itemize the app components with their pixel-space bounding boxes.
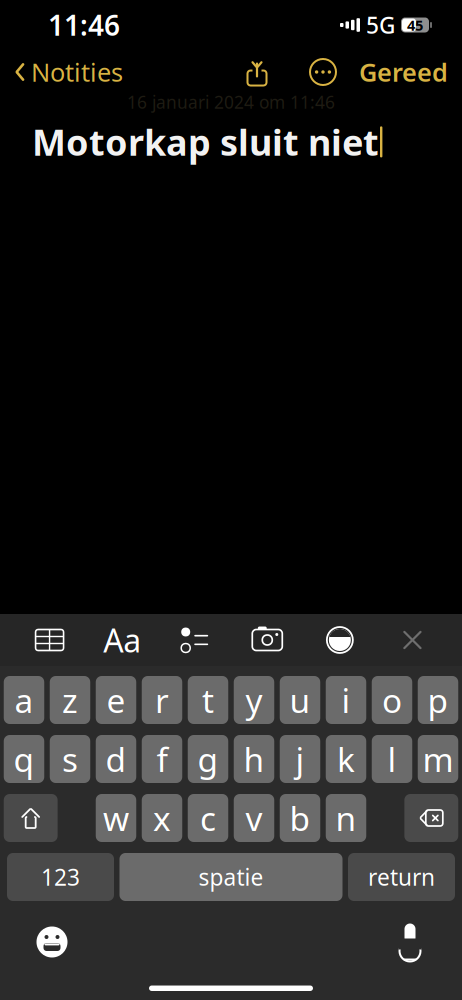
staticText: Motorkap sluit niet [32,118,379,166]
button[interactable]: Dicteren [384,919,436,965]
button[interactable]: o [372,676,412,724]
button[interactable]: Checklijst [172,618,218,662]
staticText: w [103,796,129,840]
button[interactable]: 123 [7,853,114,901]
staticText: j [295,737,304,781]
button[interactable]: m [418,735,458,783]
staticText: 123 [41,862,80,892]
staticText: n [335,796,356,840]
staticText: a [14,678,33,722]
staticText: c [200,796,216,840]
button[interactable]: Opmaak [99,618,145,662]
staticText: t [202,678,214,722]
button[interactable]: Tabel [27,618,73,662]
button[interactable]: v [234,794,274,842]
staticText: 45 [407,15,423,35]
button[interactable]: q [4,735,44,783]
staticText: k [337,737,355,781]
button[interactable]: Meer [301,52,345,92]
button[interactable]: l [372,735,412,783]
staticText: e [106,678,125,722]
button[interactable]: Markeringen [317,618,363,662]
staticText: 5G [366,10,395,40]
staticText: r [155,678,169,722]
button[interactable]: r [142,676,182,724]
staticText: u [289,678,310,722]
button[interactable]: b [280,794,320,842]
button[interactable]: g [188,735,228,783]
staticText: p [427,678,448,722]
button[interactable]: Emoji [26,919,78,965]
button[interactable]: z [50,676,90,724]
staticText: Notities [31,55,123,89]
staticText: 11:46 [48,6,120,44]
staticText: l [387,737,396,781]
button[interactable]: f [142,735,182,783]
staticText: g [197,737,218,781]
staticText: m [422,737,453,781]
button[interactable]: e [96,676,136,724]
button[interactable]: Notities [0,47,123,97]
staticText: return [368,862,435,892]
button[interactable]: Gereed [345,47,462,97]
button[interactable]: c [188,794,228,842]
button[interactable]: Camera [244,618,290,662]
staticText: f [156,737,167,781]
button[interactable]: Sluit toetsenbord [389,618,435,662]
button[interactable]: w [96,794,136,842]
button[interactable]: Shift [4,794,58,842]
staticText: spatie [198,862,263,892]
button[interactable]: s [50,735,90,783]
button[interactable]: p [418,676,458,724]
button[interactable]: i [326,676,366,724]
staticText: y [245,678,262,722]
button[interactable]: x [142,794,182,842]
staticText: v [245,796,262,840]
button[interactable]: k [326,735,366,783]
button[interactable]: h [234,735,274,783]
button[interactable]: Verwijder [404,794,458,842]
staticText: i [341,678,350,722]
staticText: h [243,737,264,781]
button[interactable]: y [234,676,274,724]
button[interactable]: j [280,735,320,783]
staticText: 16 januari 2024 om 11:46 [127,90,335,113]
staticText: o [382,678,402,722]
button[interactable]: return [348,853,455,901]
staticText: Aa [103,619,141,661]
button[interactable]: a [4,676,44,724]
staticText: Gereed [359,55,448,89]
button[interactable]: spatie [119,853,342,901]
button[interactable]: n [326,794,366,842]
staticText: q [13,737,34,781]
staticText: x [153,796,171,840]
staticText: z [62,678,78,722]
button[interactable]: t [188,676,228,724]
staticText: s [62,737,78,781]
button[interactable]: u [280,676,320,724]
button[interactable]: d [96,735,136,783]
staticText: b [289,796,310,840]
button[interactable]: Deel [235,52,279,92]
staticText: d [105,737,126,781]
